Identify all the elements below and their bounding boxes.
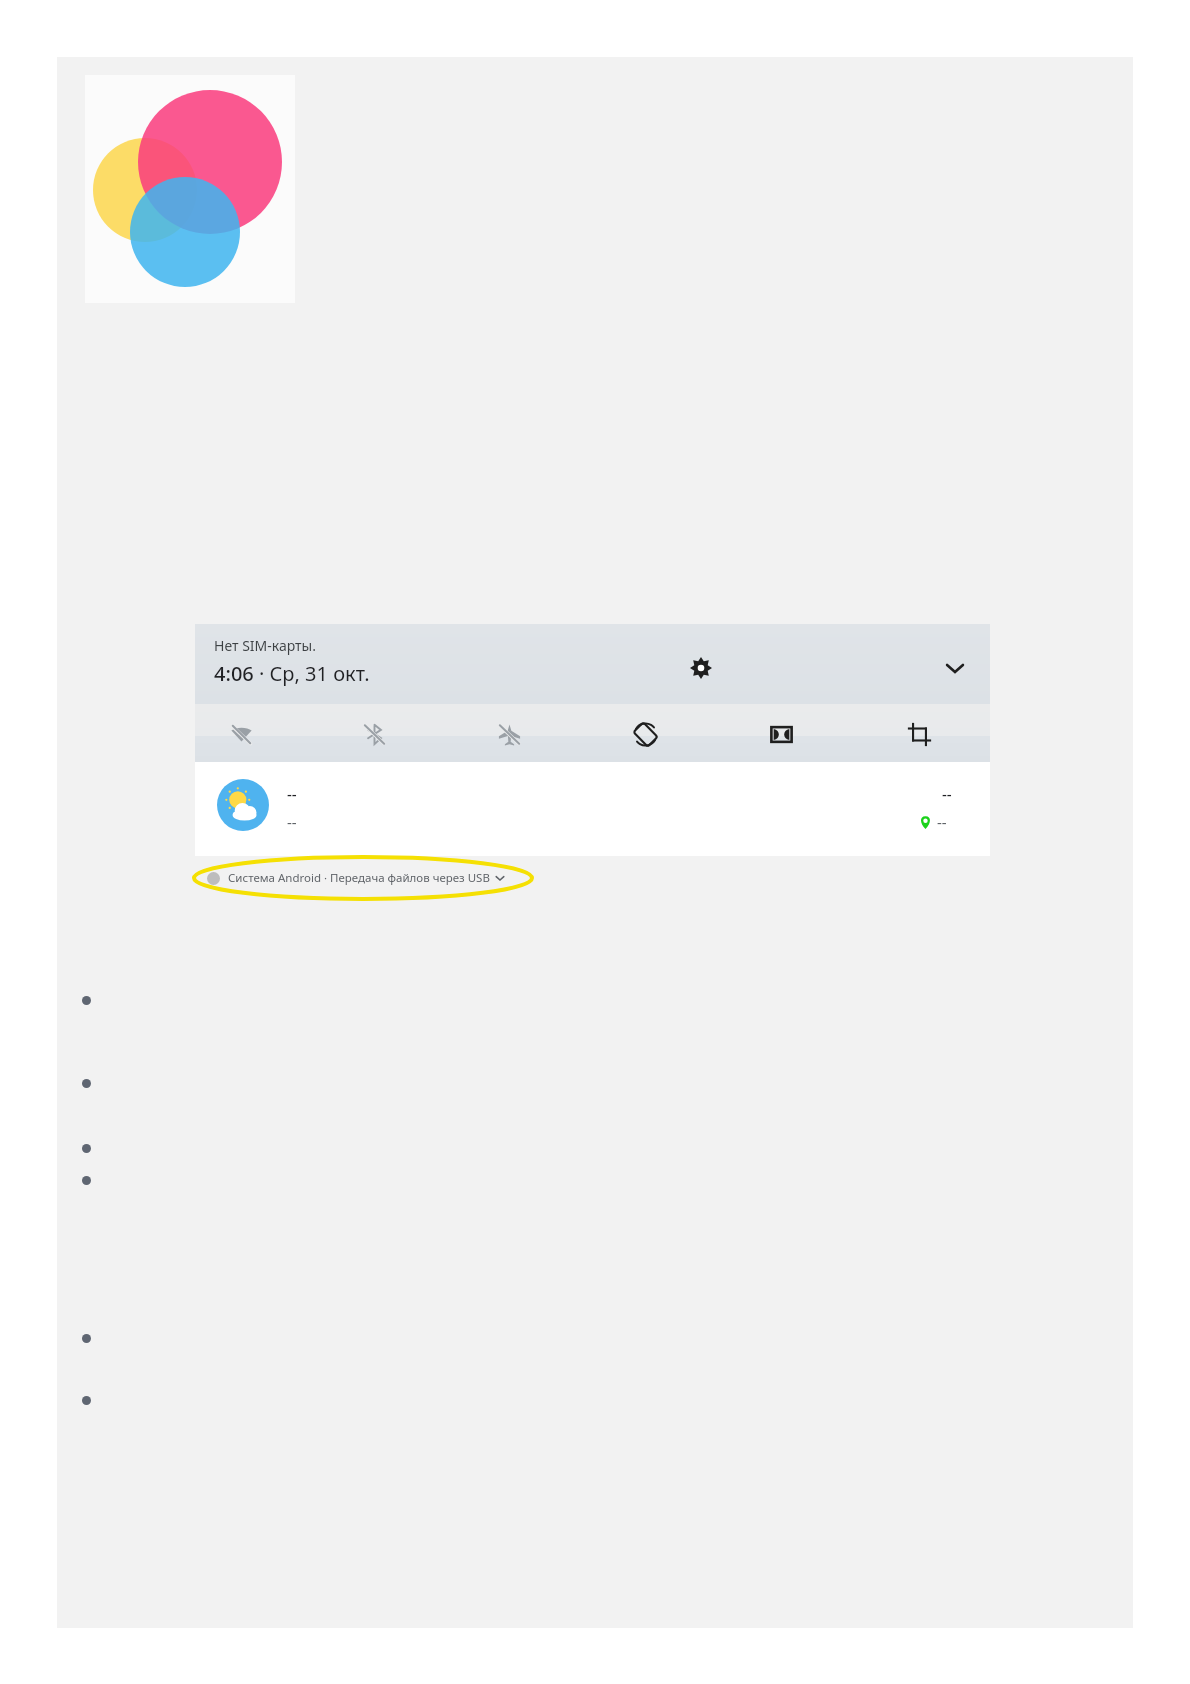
staticText: · Ср, 31 окт. — [259, 660, 370, 687]
button[interactable]: Bluetooth off — [352, 712, 396, 756]
staticText: -- — [942, 784, 952, 804]
button[interactable]: Settings — [683, 650, 719, 686]
staticText: 4:06 — [214, 660, 254, 687]
button[interactable]: Auto rotate — [623, 712, 667, 756]
staticText: -- — [937, 812, 947, 832]
staticText: Нет SIM-карты. — [214, 636, 316, 655]
button[interactable]: Cast — [759, 712, 803, 756]
staticText: -- — [287, 784, 297, 804]
button[interactable]: Screenshot — [897, 712, 941, 756]
button[interactable]: Wi-Fi off — [219, 712, 263, 756]
staticText: Система Android · Передача файлов через … — [228, 870, 490, 886]
button[interactable]: -- — [195, 762, 990, 856]
button[interactable]: Система Android · Передача файлов через … — [207, 856, 533, 900]
button[interactable]: Expand — [937, 650, 973, 686]
button[interactable]: Airplane mode off — [487, 712, 531, 756]
staticText: -- — [287, 812, 297, 832]
